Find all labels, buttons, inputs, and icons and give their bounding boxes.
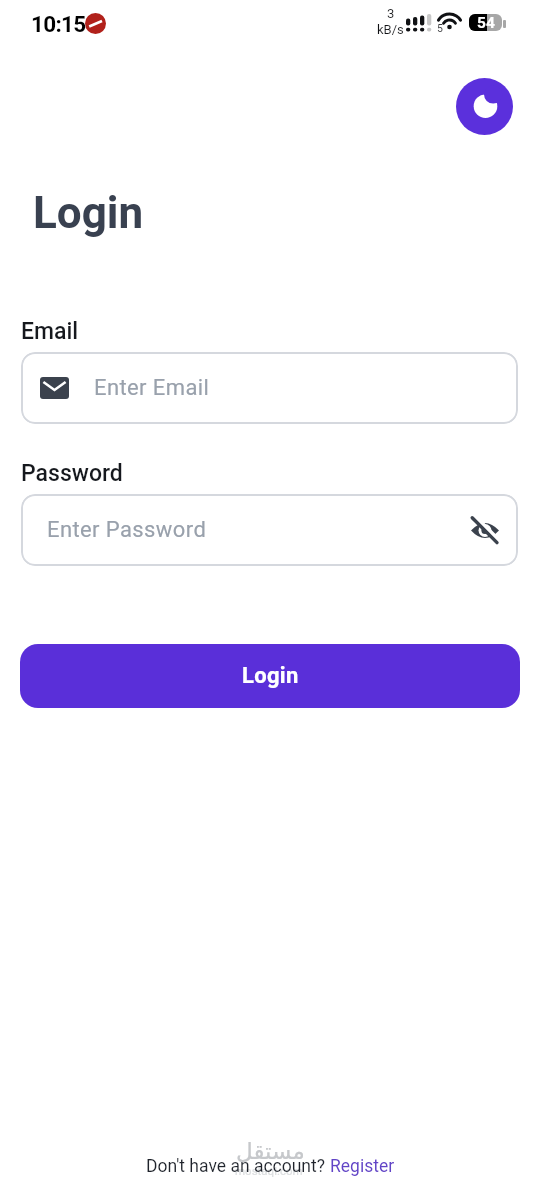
staticText: mostaql.com [235, 1164, 303, 1177]
staticText: Login [242, 663, 299, 689]
button[interactable]: Login [20, 644, 520, 708]
button[interactable]: Enter Password [21, 494, 518, 566]
staticText: Email [21, 318, 79, 345]
button[interactable]: Register [330, 1156, 395, 1177]
staticText: 5 [437, 22, 443, 34]
staticText: Enter Email [94, 375, 210, 401]
staticText: مستقل [236, 1138, 305, 1165]
button[interactable]: Enter Email [21, 352, 518, 424]
staticText: 10:15 [31, 11, 86, 37]
staticText: 3 [387, 6, 395, 21]
staticText: kB/s [377, 22, 404, 37]
staticText: Enter Password [47, 517, 207, 543]
staticText: 54 [477, 14, 495, 31]
staticText: Login [33, 187, 144, 239]
button[interactable] [456, 78, 513, 135]
staticText: Password [21, 460, 123, 487]
staticText: Don't have an account? [146, 1156, 330, 1177]
